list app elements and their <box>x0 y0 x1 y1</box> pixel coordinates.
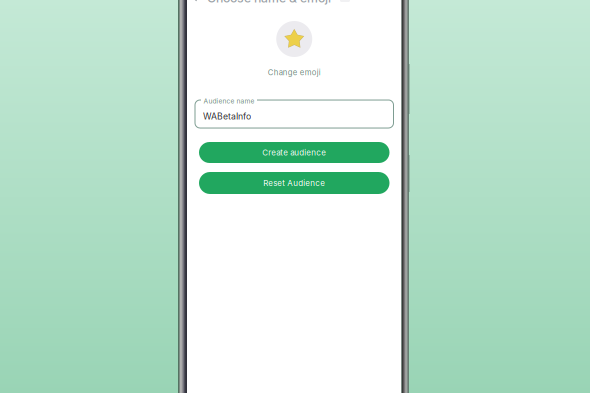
staticText: Change emoji <box>268 68 321 77</box>
staticText: Choose name & emoji <box>207 0 331 5</box>
staticText: WABetaInfo <box>203 111 251 121</box>
staticText: Create audience <box>262 148 326 157</box>
staticText: Audience name <box>203 97 254 105</box>
button[interactable]: Change emoji <box>187 69 401 76</box>
button[interactable]: Create audience <box>199 142 389 163</box>
button[interactable]: Back <box>193 0 198 1</box>
staticText: Reset Audience <box>263 178 325 188</box>
button[interactable]: Reset Audience <box>199 172 389 194</box>
